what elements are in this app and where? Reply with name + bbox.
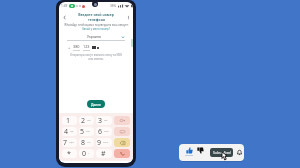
- button[interactable]: Backspace: [114, 138, 130, 147]
- staticText: 9: [97, 138, 102, 147]
- button[interactable]: Украина: [67, 34, 125, 39]
- staticText: WXYZ: [103, 141, 109, 144]
- staticText: *: [67, 149, 71, 158]
- button[interactable]: 3: [96, 116, 112, 125]
- staticText: Украина: [87, 34, 101, 39]
- button[interactable]: Subscribed: [210, 148, 233, 157]
- button[interactable]: #: [96, 149, 112, 158]
- staticText: МНО: [104, 130, 109, 133]
- staticText: 1:49: [61, 4, 68, 8]
- staticText: 7: [63, 138, 68, 147]
- staticText: 3: [98, 116, 103, 125]
- button[interactable]: Message: [114, 127, 130, 136]
- staticText: Subscribed: [213, 150, 231, 155]
- staticText: Введите свой номер: [78, 12, 114, 17]
- staticText: PQRS: [69, 141, 74, 144]
- staticText: ГДЕ: [70, 130, 74, 133]
- staticText: телефона: [88, 17, 105, 22]
- button[interactable]: 6: [96, 127, 112, 136]
- button[interactable]: 8: [79, 138, 94, 147]
- staticText: WhatsApp необходимо подтвердить ваш акка…: [64, 23, 129, 27]
- staticText: TUV: [87, 141, 91, 144]
- staticText: 380: [73, 44, 80, 49]
- staticText: ЖЗИ: [86, 130, 91, 133]
- button[interactable]: 7: [62, 138, 77, 147]
- button[interactable]: Далее: [87, 100, 105, 108]
- staticText: +: [68, 45, 71, 50]
- staticText: 2: [81, 116, 86, 125]
- button[interactable]: Dislike: [196, 147, 205, 157]
- staticText: 123: [83, 44, 90, 49]
- staticText: 6: [98, 127, 103, 136]
- staticText: ABC: [87, 119, 91, 122]
- button[interactable]: More options: [125, 14, 131, 20]
- button[interactable]: Video call: [114, 116, 130, 125]
- button[interactable]: 1: [62, 116, 77, 125]
- button[interactable]: 0: [79, 149, 94, 158]
- button[interactable]: 5: [79, 127, 94, 136]
- staticText: Операторы могут взимать плату за SMS или…: [70, 53, 122, 61]
- staticText: +: [88, 152, 90, 155]
- staticText: 5: [80, 127, 85, 136]
- staticText: DEF: [104, 119, 108, 122]
- staticText: 1: [66, 116, 71, 125]
- staticText: 0: [82, 149, 87, 158]
- button[interactable]: 4: [62, 127, 77, 136]
- button[interactable]: Like: [184, 147, 193, 158]
- button[interactable]: Back: [61, 14, 67, 20]
- staticText: 4: [64, 127, 69, 136]
- staticText: #: [101, 149, 106, 158]
- button[interactable]: Call: [114, 149, 130, 158]
- staticText: 36%: [110, 4, 117, 8]
- button[interactable]: 2: [79, 116, 94, 125]
- button[interactable]: Notifications: [235, 148, 243, 156]
- button[interactable]: 9: [96, 138, 112, 147]
- staticText: 8: [81, 138, 86, 147]
- staticText: Какой у меня номер?: [82, 27, 110, 31]
- button[interactable]: *: [62, 149, 77, 158]
- staticText: Далее: [91, 102, 101, 106]
